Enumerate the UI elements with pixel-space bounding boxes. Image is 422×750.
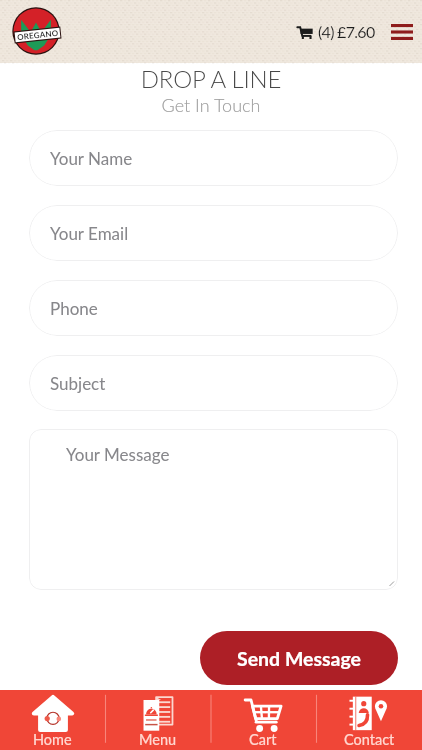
- button[interactable]: Cart: [210, 690, 316, 750]
- staticText: OREGANO: [17, 28, 59, 42]
- button[interactable]: Contact: [316, 690, 422, 750]
- staticText: Get In Touch: [0, 94, 422, 116]
- staticText: Contact: [344, 731, 395, 748]
- button[interactable]: Your Email: [29, 205, 398, 261]
- staticText: Phone: [50, 298, 98, 318]
- button[interactable]: Subject: [29, 355, 398, 411]
- button[interactable]: Menu: [388, 18, 416, 46]
- staticText: Your Email: [50, 223, 129, 243]
- button[interactable]: Phone: [29, 280, 398, 336]
- staticText: Subject: [50, 373, 106, 393]
- staticText: Menu: [139, 731, 177, 748]
- button[interactable]: Home: [0, 690, 105, 750]
- staticText: Cart: [249, 731, 277, 748]
- staticText: Home: [33, 731, 72, 748]
- button[interactable]: Your Message: [29, 429, 398, 590]
- staticText: Send Message: [237, 647, 361, 670]
- staticText: Your Message: [66, 444, 170, 464]
- staticText: (4) £7.60: [318, 22, 375, 41]
- button[interactable]: Your Name: [29, 130, 398, 186]
- button[interactable]: (4) £7.60: [294, 16, 378, 47]
- button[interactable]: Send Message: [200, 631, 398, 685]
- button[interactable]: Oregano home: [8, 0, 64, 63]
- staticText: Your Name: [50, 148, 133, 168]
- staticText: DROP A LINE: [0, 64, 422, 93]
- button[interactable]: Menu: [105, 690, 210, 750]
